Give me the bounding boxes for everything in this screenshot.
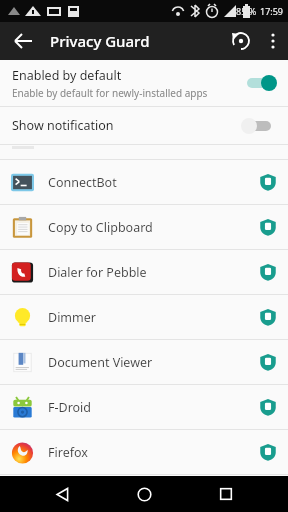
staticText: Copy to Clipboard <box>48 219 259 236</box>
staticText: Enabled by default <box>12 67 122 84</box>
staticText: Dialer for Pebble <box>48 264 259 281</box>
button[interactable]: Copy to Clipboard <box>0 205 288 249</box>
staticText: 17:59 <box>260 5 284 17</box>
button[interactable]: Dialer for Pebble <box>0 250 288 294</box>
staticText: Privacy Guard <box>50 31 150 51</box>
button[interactable]: Dimmer <box>0 295 288 339</box>
staticText: F-Droid <box>48 399 259 416</box>
button[interactable]: Enabled by default <box>0 60 288 106</box>
staticText: ConnectBot <box>48 174 259 191</box>
button[interactable]: F-Droid <box>0 385 288 429</box>
staticText: Dimmer <box>48 309 259 326</box>
button[interactable]: Back <box>6 25 38 57</box>
staticText: Document Viewer <box>48 354 259 371</box>
button[interactable]: Home <box>124 476 164 512</box>
staticText: Firefox <box>48 444 259 461</box>
button[interactable]: Firefox <box>0 430 288 474</box>
button[interactable]: Show notification <box>0 107 288 144</box>
staticText: 85 % <box>236 5 257 17</box>
button[interactable]: Reset <box>224 24 258 58</box>
staticText: Enable by default for newly-installed ap… <box>12 86 208 100</box>
button[interactable]: Recents <box>206 476 246 512</box>
button[interactable]: ConnectBot <box>0 160 288 204</box>
button[interactable]: More options <box>258 26 288 56</box>
button[interactable]: Back <box>42 476 82 512</box>
staticText: Show notification <box>12 117 114 134</box>
button[interactable]: Document Viewer <box>0 340 288 384</box>
